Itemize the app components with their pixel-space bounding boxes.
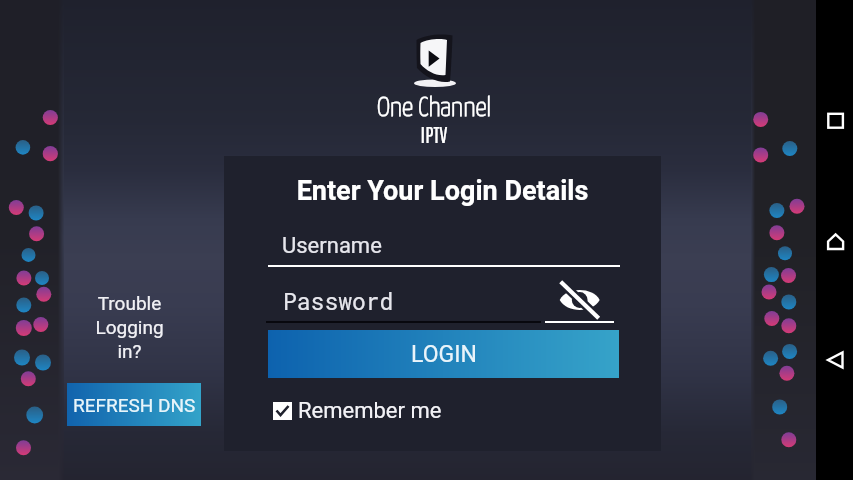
- staticText: IPTV: [334, 121, 534, 146]
- button[interactable]: LOGIN: [268, 330, 619, 378]
- staticText: Remember me: [298, 398, 442, 424]
- button[interactable]: Remember me: [273, 398, 442, 424]
- button[interactable]: Back: [820, 341, 850, 381]
- staticText: Trouble Logging in?: [62, 292, 197, 363]
- staticText: Password: [283, 286, 394, 316]
- button[interactable]: REFRESH DNS: [67, 383, 201, 426]
- button[interactable]: Show password: [546, 275, 620, 320]
- staticText: LOGIN: [411, 341, 477, 368]
- button[interactable]: Recent apps: [820, 100, 850, 140]
- staticText: Enter Your Login Details: [224, 175, 661, 207]
- staticText: Username: [282, 233, 382, 259]
- staticText: REFRESH DNS: [73, 394, 196, 416]
- staticText: One Channel: [334, 95, 534, 121]
- button[interactable]: Home: [820, 221, 850, 261]
